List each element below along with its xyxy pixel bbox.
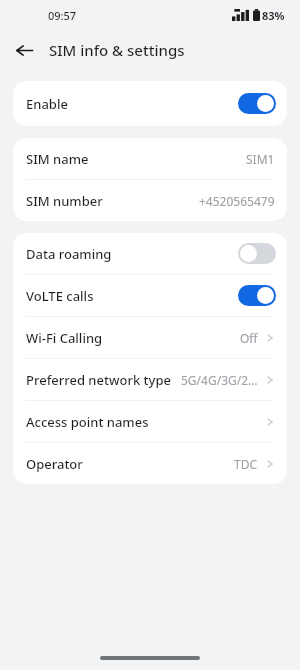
staticText: SIM name <box>26 150 89 168</box>
button[interactable]: SIM name <box>13 138 287 179</box>
button[interactable]: Switch on <box>238 285 276 306</box>
button[interactable]: Switch off <box>238 243 276 264</box>
staticText: Off <box>240 330 258 346</box>
button[interactable]: Wi-Fi Calling <box>13 317 287 358</box>
staticText: SIM number <box>26 192 103 210</box>
staticText: Enable <box>26 95 68 113</box>
staticText: Preferred network type <box>26 371 171 389</box>
button[interactable]: Enable <box>13 81 287 126</box>
staticText: 83% <box>262 8 285 23</box>
staticText: 5G/4G/3G/2… <box>181 372 258 388</box>
staticText: Data roaming <box>26 245 112 263</box>
staticText: Wi-Fi Calling <box>26 329 103 347</box>
button[interactable]: Operator <box>13 443 287 484</box>
staticText: +4520565479 <box>199 193 275 209</box>
button[interactable]: Preferred network type <box>13 359 287 400</box>
staticText: VoLTE calls <box>26 287 94 305</box>
button[interactable]: Back <box>10 36 38 64</box>
staticText: Access point names <box>26 413 149 431</box>
button[interactable]: SIM number <box>13 180 287 221</box>
button[interactable]: Switch on <box>238 93 276 114</box>
button[interactable]: VoLTE calls <box>13 275 287 316</box>
staticText: TDC <box>234 456 258 472</box>
staticText: 09:57 <box>48 8 77 23</box>
button[interactable]: Access point names <box>13 401 287 442</box>
staticText: SIM info & settings <box>49 40 185 60</box>
staticText: Operator <box>26 455 83 473</box>
staticText: SIM1 <box>246 151 275 167</box>
button[interactable]: Data roaming <box>13 233 287 274</box>
